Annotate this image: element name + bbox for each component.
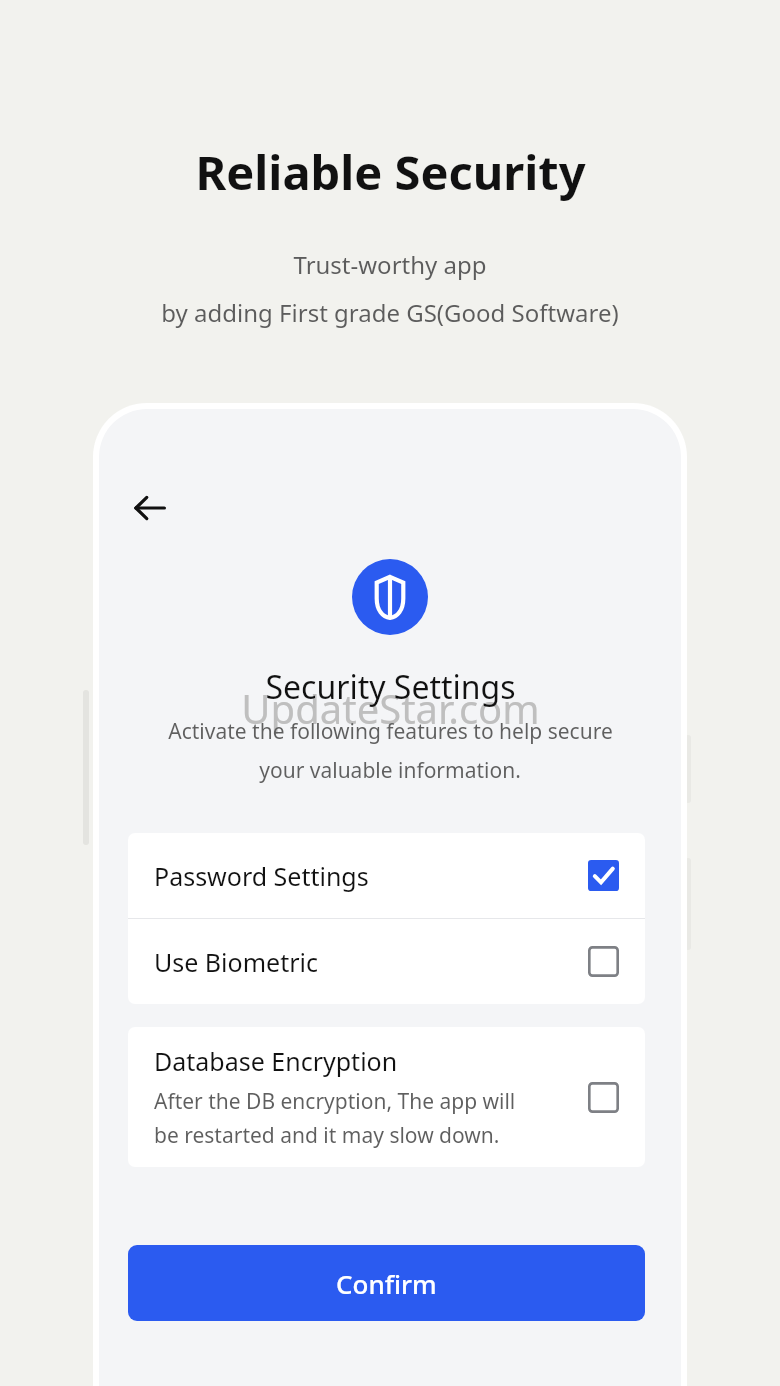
staticText: UpdateStar.com [241,681,540,735]
button[interactable]: Confirm [128,1245,645,1321]
staticText: be restarted and it may slow down. [154,1121,500,1150]
staticText: Reliable Security [195,140,586,204]
staticText: Use Biometric [154,945,588,979]
staticText: Database Encryption [154,1044,398,1078]
staticText: Security Settings [265,665,516,709]
staticText: Trust-worthy app [293,248,487,281]
staticText: by adding First grade GS(Good Software) [161,296,619,329]
staticText: Password Settings [154,859,588,893]
staticText: Confirm [336,1266,437,1301]
button[interactable]: Use Biometric [128,919,645,1004]
button[interactable]: Database Encryption [128,1027,645,1167]
staticText: your valuable information. [259,756,521,785]
staticText: Activate the following features to help … [168,717,613,746]
staticText: After the DB encryption, The app will [154,1087,516,1116]
button[interactable]: Back [126,484,174,532]
button[interactable]: Password Settings [128,833,645,918]
